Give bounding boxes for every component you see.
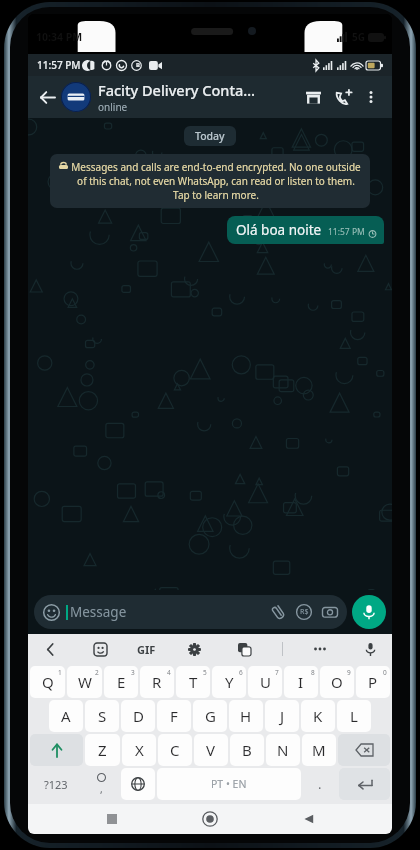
staticText: Facity Delivery Conta… (98, 80, 255, 100)
staticText: Messages and calls are end-to-end encryp… (71, 160, 361, 202)
staticText: R (152, 672, 162, 692)
button[interactable]: E (104, 666, 138, 698)
button[interactable]: Voice input (358, 637, 382, 661)
button[interactable]: Facity Delivery Conta… (98, 80, 294, 114)
staticText: 11:57 PM (328, 226, 365, 238)
button[interactable]: Home (195, 804, 225, 834)
button[interactable]: . (303, 768, 337, 800)
button[interactable]: Translate (232, 637, 256, 661)
staticText: Olá boa noite (236, 221, 322, 239)
staticText: 5G (352, 30, 365, 44)
staticText: 3 (131, 668, 135, 677)
button[interactable]: D (121, 700, 155, 732)
button[interactable]: P (356, 666, 390, 698)
staticText: S (98, 706, 107, 726)
button[interactable]: V (194, 734, 228, 766)
button[interactable]: T (176, 666, 210, 698)
button[interactable]: Backspace (338, 734, 390, 766)
button[interactable]: K (301, 700, 335, 732)
staticText: GIF (137, 642, 156, 657)
button[interactable]: Message (34, 595, 347, 629)
button[interactable]: Shift (30, 734, 83, 766)
button[interactable]: X (122, 734, 156, 766)
staticText: 7 (275, 668, 279, 677)
button[interactable]: ?123 (30, 768, 82, 800)
button[interactable]: N (266, 734, 300, 766)
staticText: L (350, 706, 358, 726)
button[interactable]: Voice message (352, 595, 386, 629)
staticText: 4 (167, 668, 171, 677)
staticText: F (170, 706, 178, 726)
button[interactable]: Stickers (88, 637, 112, 661)
staticText: 1 (58, 668, 62, 677)
staticText: . (318, 775, 322, 793)
button[interactable]: Change language (121, 768, 155, 800)
button[interactable]: A (49, 700, 83, 732)
staticText: 10:34 PM (36, 30, 83, 44)
staticText: P (368, 672, 378, 692)
staticText: H (240, 706, 252, 726)
button[interactable]: Settings (182, 637, 206, 661)
staticText: Z (98, 740, 107, 760)
staticText: U (260, 672, 271, 692)
button[interactable]: Add call (328, 82, 358, 112)
button[interactable]: , (84, 768, 119, 800)
staticText: 6 (239, 668, 243, 677)
staticText: C (170, 740, 180, 760)
staticText: 8 (311, 668, 315, 677)
button[interactable]: Recents (97, 804, 127, 834)
button[interactable]: O (320, 666, 354, 698)
staticText: I (298, 672, 304, 692)
button[interactable]: U (248, 666, 282, 698)
staticText: G (205, 706, 216, 726)
button[interactable]: F (157, 700, 191, 732)
button[interactable]: C (158, 734, 192, 766)
button[interactable]: Z (85, 734, 120, 766)
button[interactable]: W (67, 666, 102, 698)
button[interactable]: Messages and calls are end-to-end encryp… (50, 154, 370, 208)
button[interactable]: Back (294, 804, 324, 834)
button[interactable]: J (265, 700, 299, 732)
staticText: N (277, 740, 289, 760)
staticText: B (242, 740, 252, 760)
staticText: 9 (347, 668, 351, 677)
staticText: 11:57 PM (37, 58, 81, 72)
staticText: R$ (300, 607, 309, 617)
button[interactable]: PT • EN (157, 768, 301, 800)
button[interactable]: Back (34, 84, 60, 110)
staticText: T (189, 672, 198, 692)
button[interactable]: Olá boa noite (227, 216, 384, 244)
staticText: 5 (203, 668, 207, 677)
staticText: D (133, 706, 144, 726)
staticText: V (206, 740, 216, 760)
staticText: Y (225, 672, 234, 692)
button[interactable]: R (140, 666, 174, 698)
button[interactable]: H (229, 700, 263, 732)
staticText: W (78, 672, 92, 692)
button[interactable]: G (193, 700, 227, 732)
button[interactable]: I (284, 666, 318, 698)
button[interactable]: Y (212, 666, 246, 698)
button[interactable] (61, 82, 91, 112)
staticText: PT • EN (211, 777, 247, 791)
button[interactable]: More options (358, 84, 384, 110)
staticText: E (117, 672, 126, 692)
staticText: 2 (95, 668, 99, 677)
staticText: Message (70, 603, 127, 621)
button[interactable]: Enter (339, 768, 390, 800)
button[interactable]: More (308, 637, 332, 661)
staticText: Today (195, 129, 225, 143)
button[interactable]: Business catalog (298, 82, 328, 112)
staticText: X (135, 740, 144, 760)
button[interactable]: S (85, 700, 119, 732)
button[interactable]: B (230, 734, 264, 766)
button[interactable]: Back (38, 637, 62, 661)
button[interactable]: L (337, 700, 371, 732)
staticText: J (280, 706, 285, 726)
staticText: A (61, 706, 71, 726)
button[interactable]: M (302, 734, 336, 766)
staticText: ?123 (44, 777, 68, 792)
staticText: B (136, 61, 140, 69)
button[interactable]: GIF (137, 642, 156, 657)
button[interactable]: Q (30, 666, 65, 698)
